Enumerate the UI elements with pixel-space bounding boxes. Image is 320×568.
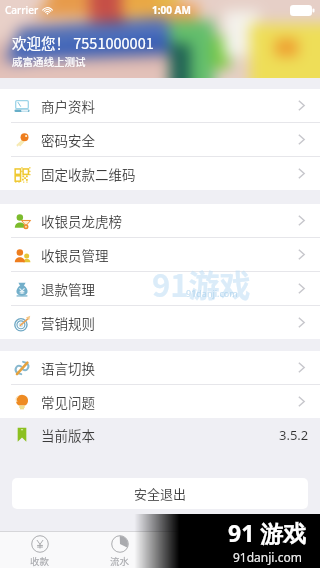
button[interactable]: 密码安全 [0,123,320,156]
button[interactable]: 收银员龙虎榜 [0,204,320,237]
staticText: 1:00 AM [152,3,191,17]
button[interactable]: 流水 [80,532,160,568]
staticText: 固定收款二维码 [41,164,136,184]
staticText: 收银员龙虎榜 [41,211,122,231]
button[interactable]: 固定收款二维码 [0,157,320,190]
button[interactable]: 安全退出 [12,478,308,509]
staticText: 威富通线上测试 [12,54,86,69]
button[interactable]: 退款管理 [0,272,320,305]
button[interactable]: 语言切换 [0,351,320,384]
staticText: 流水 [110,554,130,568]
button[interactable]: 会员 [160,532,240,568]
staticText: 收银员管理 [41,245,109,265]
button[interactable]: 营销规则 [0,306,320,339]
button[interactable]: 当前版本 [0,418,320,451]
staticText: 安全退出 [134,484,187,503]
staticText: 营销规则 [41,313,95,333]
button[interactable]: 常见问题 [0,385,320,418]
staticText: 语言切换 [41,358,95,378]
staticText: 当前版本 [41,425,95,445]
staticText: 欢迎您！ 7551000001 [12,32,154,53]
staticText: 91danji.com [186,287,238,299]
staticText: 我的 [270,554,290,568]
staticText: 密码安全 [41,130,95,150]
button[interactable]: 收银员管理 [0,238,320,271]
staticText: 退款管理 [41,279,95,299]
staticText: 91游戏 [152,261,251,306]
staticText: 收款 [30,554,50,568]
button[interactable]: 商户资料 [0,89,320,122]
staticText: Carrier [5,3,39,17]
staticText: 3.5.2 [279,426,309,444]
button[interactable]: 收款 [0,532,80,568]
staticText: 91danji.com [233,549,302,565]
staticText: 常见问题 [41,392,95,412]
staticText: 91 游戏 [228,517,307,548]
button[interactable]: 我的 [240,532,320,568]
staticText: 商户资料 [41,96,95,116]
